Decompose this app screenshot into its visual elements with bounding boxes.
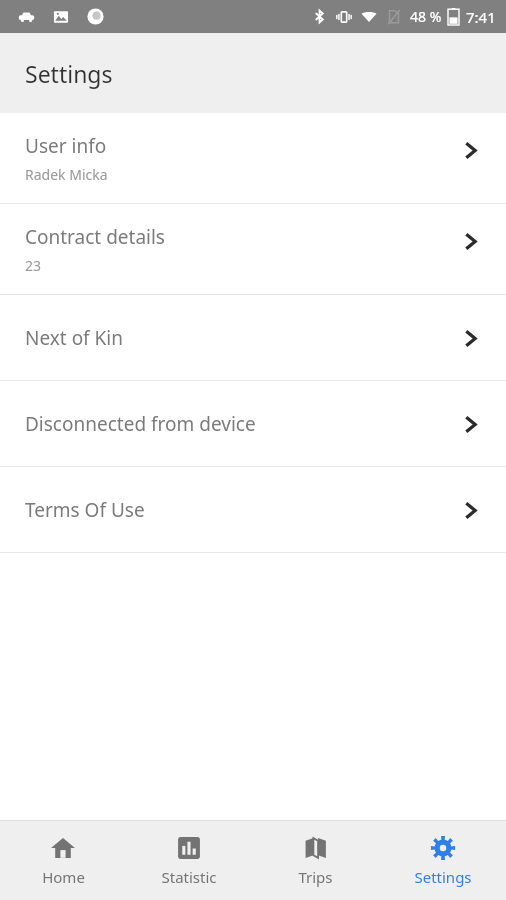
- staticText: Statistic: [161, 867, 217, 887]
- button[interactable]: Contract details: [0, 204, 506, 294]
- staticText: Settings: [25, 58, 113, 89]
- button[interactable]: Disconnected from device: [0, 381, 506, 466]
- staticText: Next of Kin: [25, 325, 124, 351]
- staticText: Disconnected from device: [25, 411, 256, 437]
- staticText: 23: [25, 256, 42, 275]
- staticText: Settings: [414, 867, 472, 887]
- staticText: Trips: [298, 867, 333, 887]
- button[interactable]: Statistic: [126, 821, 252, 900]
- staticText: 7:41: [466, 7, 496, 27]
- button[interactable]: Next of Kin: [0, 295, 506, 380]
- button[interactable]: Settings: [379, 821, 506, 900]
- staticText: Home: [42, 867, 85, 887]
- button[interactable]: Home: [0, 821, 126, 900]
- staticText: Radek Micka: [25, 165, 108, 184]
- button[interactable]: User info: [0, 113, 506, 203]
- button[interactable]: Terms Of Use: [0, 467, 506, 552]
- staticText: Contract details: [25, 224, 165, 250]
- staticText: Terms Of Use: [25, 497, 145, 523]
- staticText: 48 %: [410, 7, 442, 26]
- button[interactable]: Trips: [252, 821, 379, 900]
- staticText: User info: [25, 133, 107, 159]
